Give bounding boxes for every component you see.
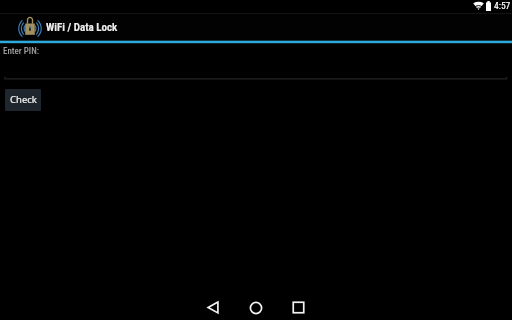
button[interactable]: Home: [234, 295, 277, 320]
button[interactable]: Check: [5, 89, 41, 111]
button[interactable]: Back: [191, 295, 234, 320]
staticText: WiFi / Data Lock: [46, 21, 118, 34]
staticText: 4:57: [494, 0, 511, 11]
staticText: Check: [10, 93, 37, 106]
button[interactable]: Recent apps: [277, 295, 320, 320]
staticText: Enter PIN:: [3, 46, 40, 57]
